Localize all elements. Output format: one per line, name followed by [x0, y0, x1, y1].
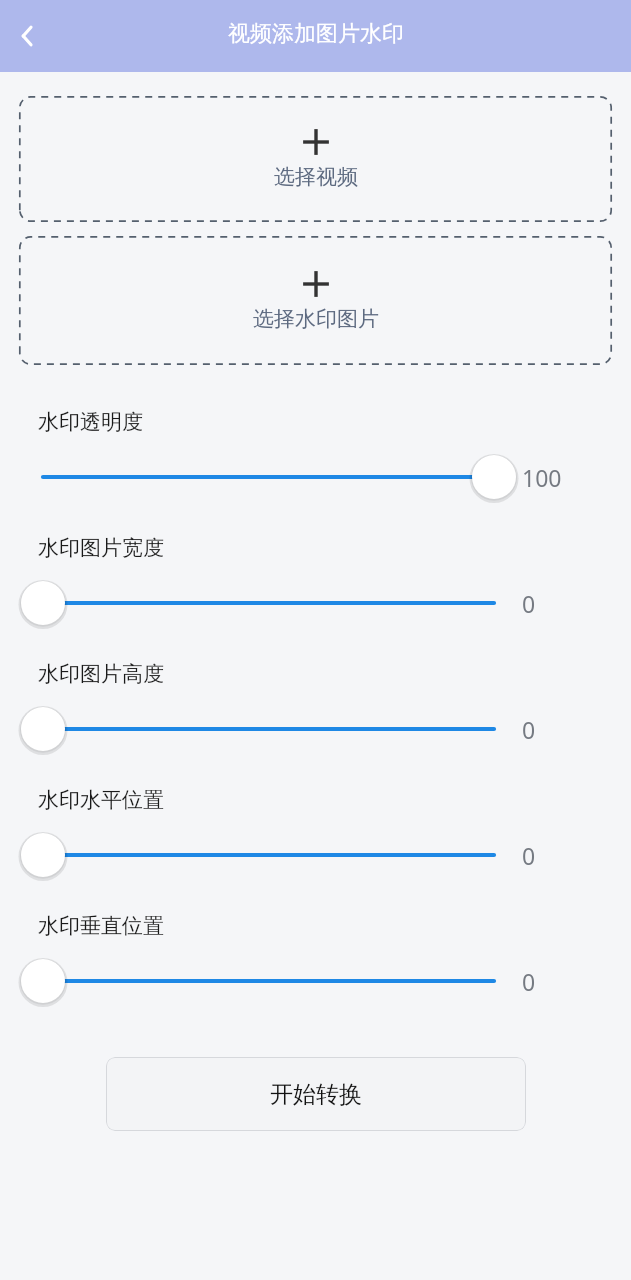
staticText: 0 [522, 966, 536, 997]
staticText: 0 [522, 714, 536, 745]
button[interactable]: 水印透明度 [21, 453, 516, 501]
staticText: 100 [522, 462, 562, 493]
staticText: 选择视频 [274, 164, 358, 190]
staticText: 水印图片高度 [38, 661, 164, 687]
button[interactable]: 水印垂直位置 [21, 957, 516, 1005]
button[interactable]: 水印图片高度 [21, 705, 516, 753]
staticText: 视频添加图片水印 [228, 20, 404, 48]
staticText: 水印垂直位置 [38, 913, 164, 939]
staticText: 0 [522, 588, 536, 619]
staticText: 0 [522, 840, 536, 871]
staticText: 选择水印图片 [253, 306, 379, 332]
staticText: 水印水平位置 [38, 787, 164, 813]
staticText: 水印透明度 [38, 409, 143, 435]
staticText: 开始转换 [270, 1080, 362, 1109]
button[interactable]: 水印水平位置 [21, 831, 516, 879]
button[interactable]: 选择视频 [19, 96, 612, 222]
button[interactable]: 水印图片宽度 [21, 579, 516, 627]
button[interactable]: Back [0, 8, 56, 64]
staticText: 水印图片宽度 [38, 535, 164, 561]
button[interactable]: 开始转换 [106, 1057, 526, 1131]
button[interactable]: 选择水印图片 [19, 236, 612, 365]
